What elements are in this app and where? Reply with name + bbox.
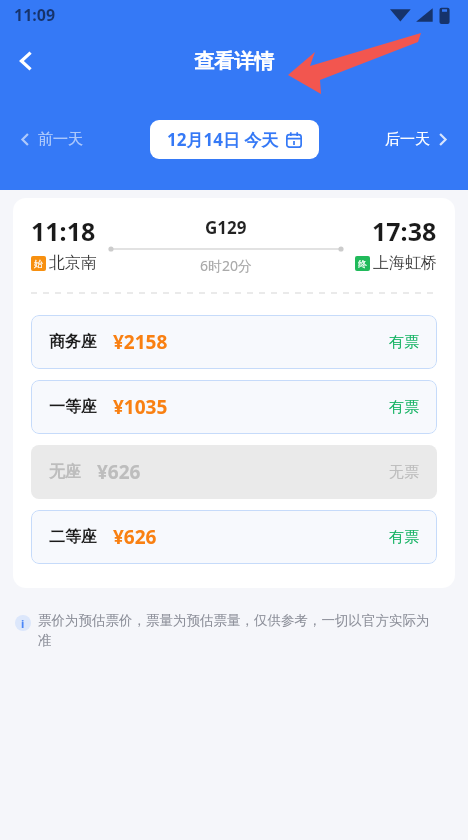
staticText: 有票 <box>389 333 419 352</box>
staticText: 有票 <box>389 528 419 547</box>
staticText: 二等座 <box>49 527 97 547</box>
staticText: 前一天 <box>38 130 83 149</box>
staticText: 6时20分 <box>200 256 253 275</box>
staticText: 12月14日 今天 <box>167 128 279 151</box>
button[interactable]: 后一天 <box>377 124 456 155</box>
staticText: 查看详情 <box>194 49 274 74</box>
button[interactable]: 无座 <box>31 445 437 499</box>
staticText: 11:09 <box>14 4 56 26</box>
staticText: ¥2158 <box>113 329 168 355</box>
button[interactable]: 一等座 <box>31 380 437 434</box>
staticText: 后一天 <box>385 130 430 149</box>
button[interactable]: Back <box>0 34 54 88</box>
staticText: ¥626 <box>97 459 141 485</box>
button[interactable]: 商务座 <box>31 315 437 369</box>
staticText: ¥1035 <box>113 394 168 420</box>
button[interactable]: 二等座 <box>31 510 437 564</box>
staticText: 一等座 <box>49 397 97 417</box>
staticText: 票价为预估票价，票量为预估票量，仅供参考，一切以官方实际为准 <box>38 612 442 649</box>
staticText: 有票 <box>389 398 419 417</box>
staticText: ¥626 <box>113 524 157 550</box>
staticText: 始 <box>34 258 43 269</box>
staticText: G129 <box>205 216 247 239</box>
staticText: 无座 <box>49 462 81 482</box>
staticText: 终 <box>358 258 367 269</box>
button[interactable]: 12月14日 今天 <box>150 120 319 159</box>
staticText: 11:18 <box>31 214 96 248</box>
button[interactable]: 前一天 <box>12 124 91 155</box>
staticText: 17:38 <box>372 214 437 248</box>
staticText: 上海虹桥 <box>373 253 437 273</box>
staticText: 商务座 <box>49 332 97 352</box>
staticText: i <box>21 616 25 631</box>
staticText: 北京南 <box>49 253 97 273</box>
staticText: 无票 <box>389 463 419 482</box>
